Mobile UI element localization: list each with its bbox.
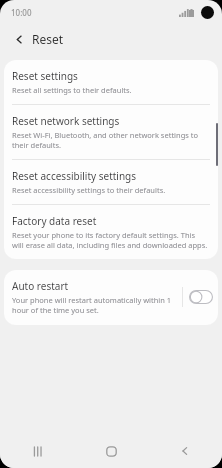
button[interactable]: Home xyxy=(74,434,148,468)
button[interactable]: Back xyxy=(10,30,28,48)
staticText: Reset xyxy=(32,31,64,47)
staticText: Reset network settings xyxy=(12,114,120,128)
staticText: Reset your phone to its factory default … xyxy=(12,230,208,250)
button[interactable]: Reset network settings xyxy=(4,105,218,159)
button[interactable]: Factory data reset xyxy=(4,205,218,259)
staticText: Your phone will restart automatically wi… xyxy=(12,295,177,315)
button[interactable]: Reset accessibility settings xyxy=(4,160,218,204)
staticText: Reset accessibility settings to their de… xyxy=(12,185,166,195)
staticText: Reset all settings to their defaults. xyxy=(12,85,132,95)
staticText: Reset accessibility settings xyxy=(12,169,137,183)
staticText: Reset settings xyxy=(12,69,78,83)
staticText: Factory data reset xyxy=(12,214,97,228)
button[interactable]: Recent apps xyxy=(0,434,74,468)
button[interactable]: Reset settings xyxy=(4,60,218,104)
staticText: Reset Wi-Fi, Bluetooth, and other networ… xyxy=(12,130,208,150)
staticText: 10:00 xyxy=(11,7,32,18)
staticText: Auto restart xyxy=(12,279,69,293)
button[interactable]: Back xyxy=(148,434,222,468)
button[interactable]: Auto restart toggle xyxy=(188,289,214,305)
button[interactable]: Auto restart xyxy=(4,270,218,325)
